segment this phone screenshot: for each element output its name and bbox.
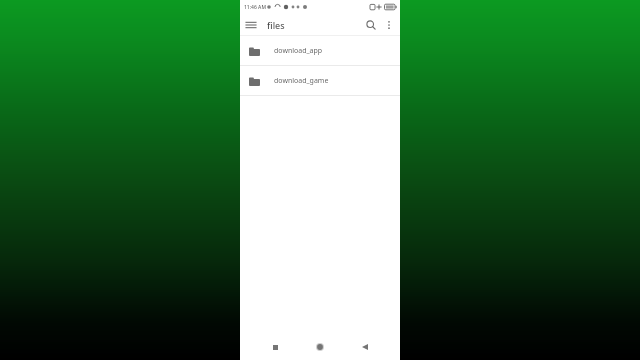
button[interactable]: Open navigation drawer [242,16,260,34]
button[interactable]: More options [380,16,398,34]
button[interactable]: Recent apps [265,337,285,357]
button[interactable]: download_app [240,36,400,66]
button[interactable]: download_game [240,66,400,96]
staticText: 11:46 AM [244,4,266,11]
staticText: download_app [274,46,323,56]
button[interactable]: Back [355,337,375,357]
button[interactable]: Home [310,337,330,357]
staticText: download_game [274,76,329,86]
button[interactable]: Search [362,16,380,34]
staticText: files [267,19,285,31]
